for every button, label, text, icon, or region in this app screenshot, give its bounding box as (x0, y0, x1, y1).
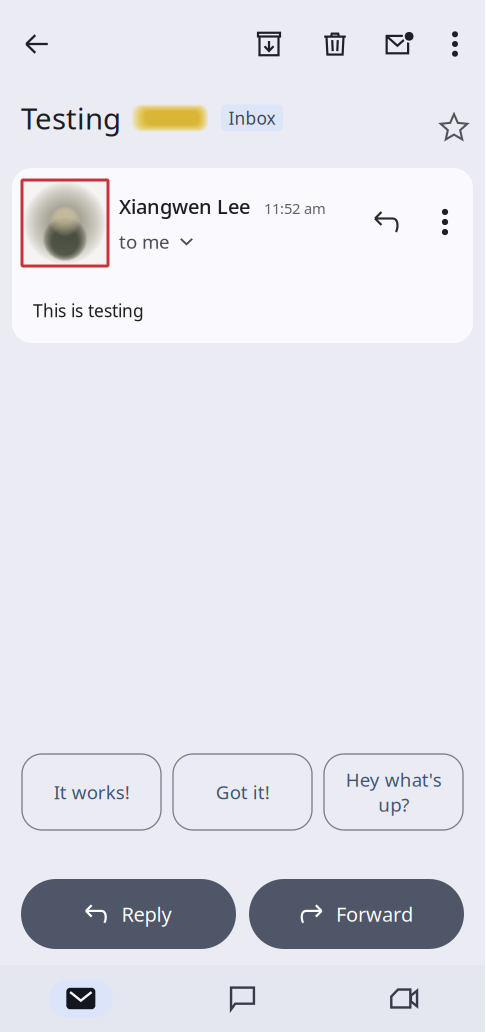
staticText: Reply (121, 901, 171, 927)
staticText: Hey what's up? (345, 767, 441, 817)
button[interactable]: More options (429, 200, 461, 244)
button[interactable]: More options (433, 16, 477, 72)
staticText: Inbox (228, 106, 275, 129)
button[interactable]: Hey what's up? (324, 754, 463, 830)
button[interactable]: Mark as unread (375, 16, 425, 72)
staticText: This is testing (33, 299, 144, 322)
button[interactable]: Back (11, 16, 63, 72)
button[interactable]: Got it! (173, 754, 312, 830)
button[interactable]: Chat (162, 965, 323, 1032)
button[interactable]: Delete (310, 16, 360, 72)
button[interactable]: It works! (22, 754, 161, 830)
staticText: Forward (336, 901, 413, 927)
button[interactable]: Archive (244, 16, 294, 72)
button[interactable]: Meet (323, 965, 485, 1032)
staticText: Xiangwen Lee (119, 193, 250, 220)
staticText: to me (119, 229, 170, 254)
button[interactable]: Forward (249, 879, 464, 949)
button[interactable]: Reply (21, 879, 236, 949)
button[interactable]: Star (428, 96, 472, 140)
button[interactable]: Mail (0, 965, 162, 1032)
staticText: Got it! (215, 780, 269, 804)
staticText: It works! (53, 780, 129, 804)
button[interactable]: Reply (365, 200, 409, 244)
staticText: 11:52 am (264, 199, 326, 218)
staticText: Testing (21, 98, 121, 137)
